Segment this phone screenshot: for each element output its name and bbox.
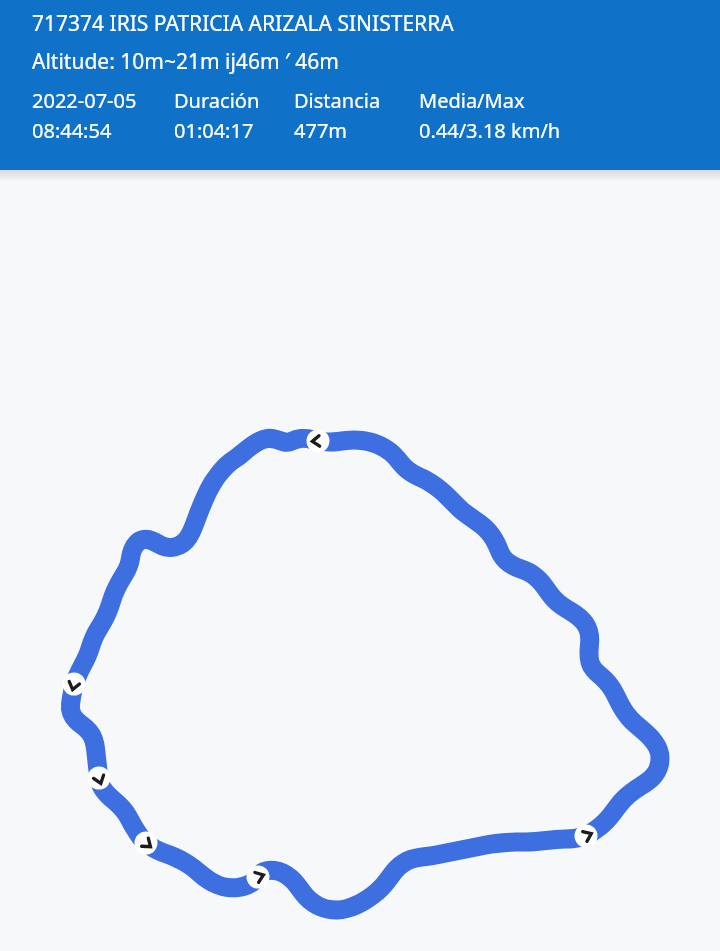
button[interactable]: Activity summary header	[0, 0, 720, 170]
staticText: 08:44:54	[32, 117, 112, 144]
staticText: Altitude: 10m~21m ij46m ′ 46m	[32, 47, 339, 76]
staticText: 2022-07-05	[32, 87, 137, 114]
staticText: 01:04:17	[174, 117, 254, 144]
staticText: 477m	[294, 117, 348, 144]
staticText: Duración	[174, 87, 260, 114]
staticText: 0.44/3.18 km/h	[419, 117, 561, 144]
staticText: Distancia	[294, 87, 381, 114]
staticText: 717374 IRIS PATRICIA ARIZALA SINISTERRA	[32, 9, 454, 38]
staticText: Media/Max	[419, 87, 525, 114]
